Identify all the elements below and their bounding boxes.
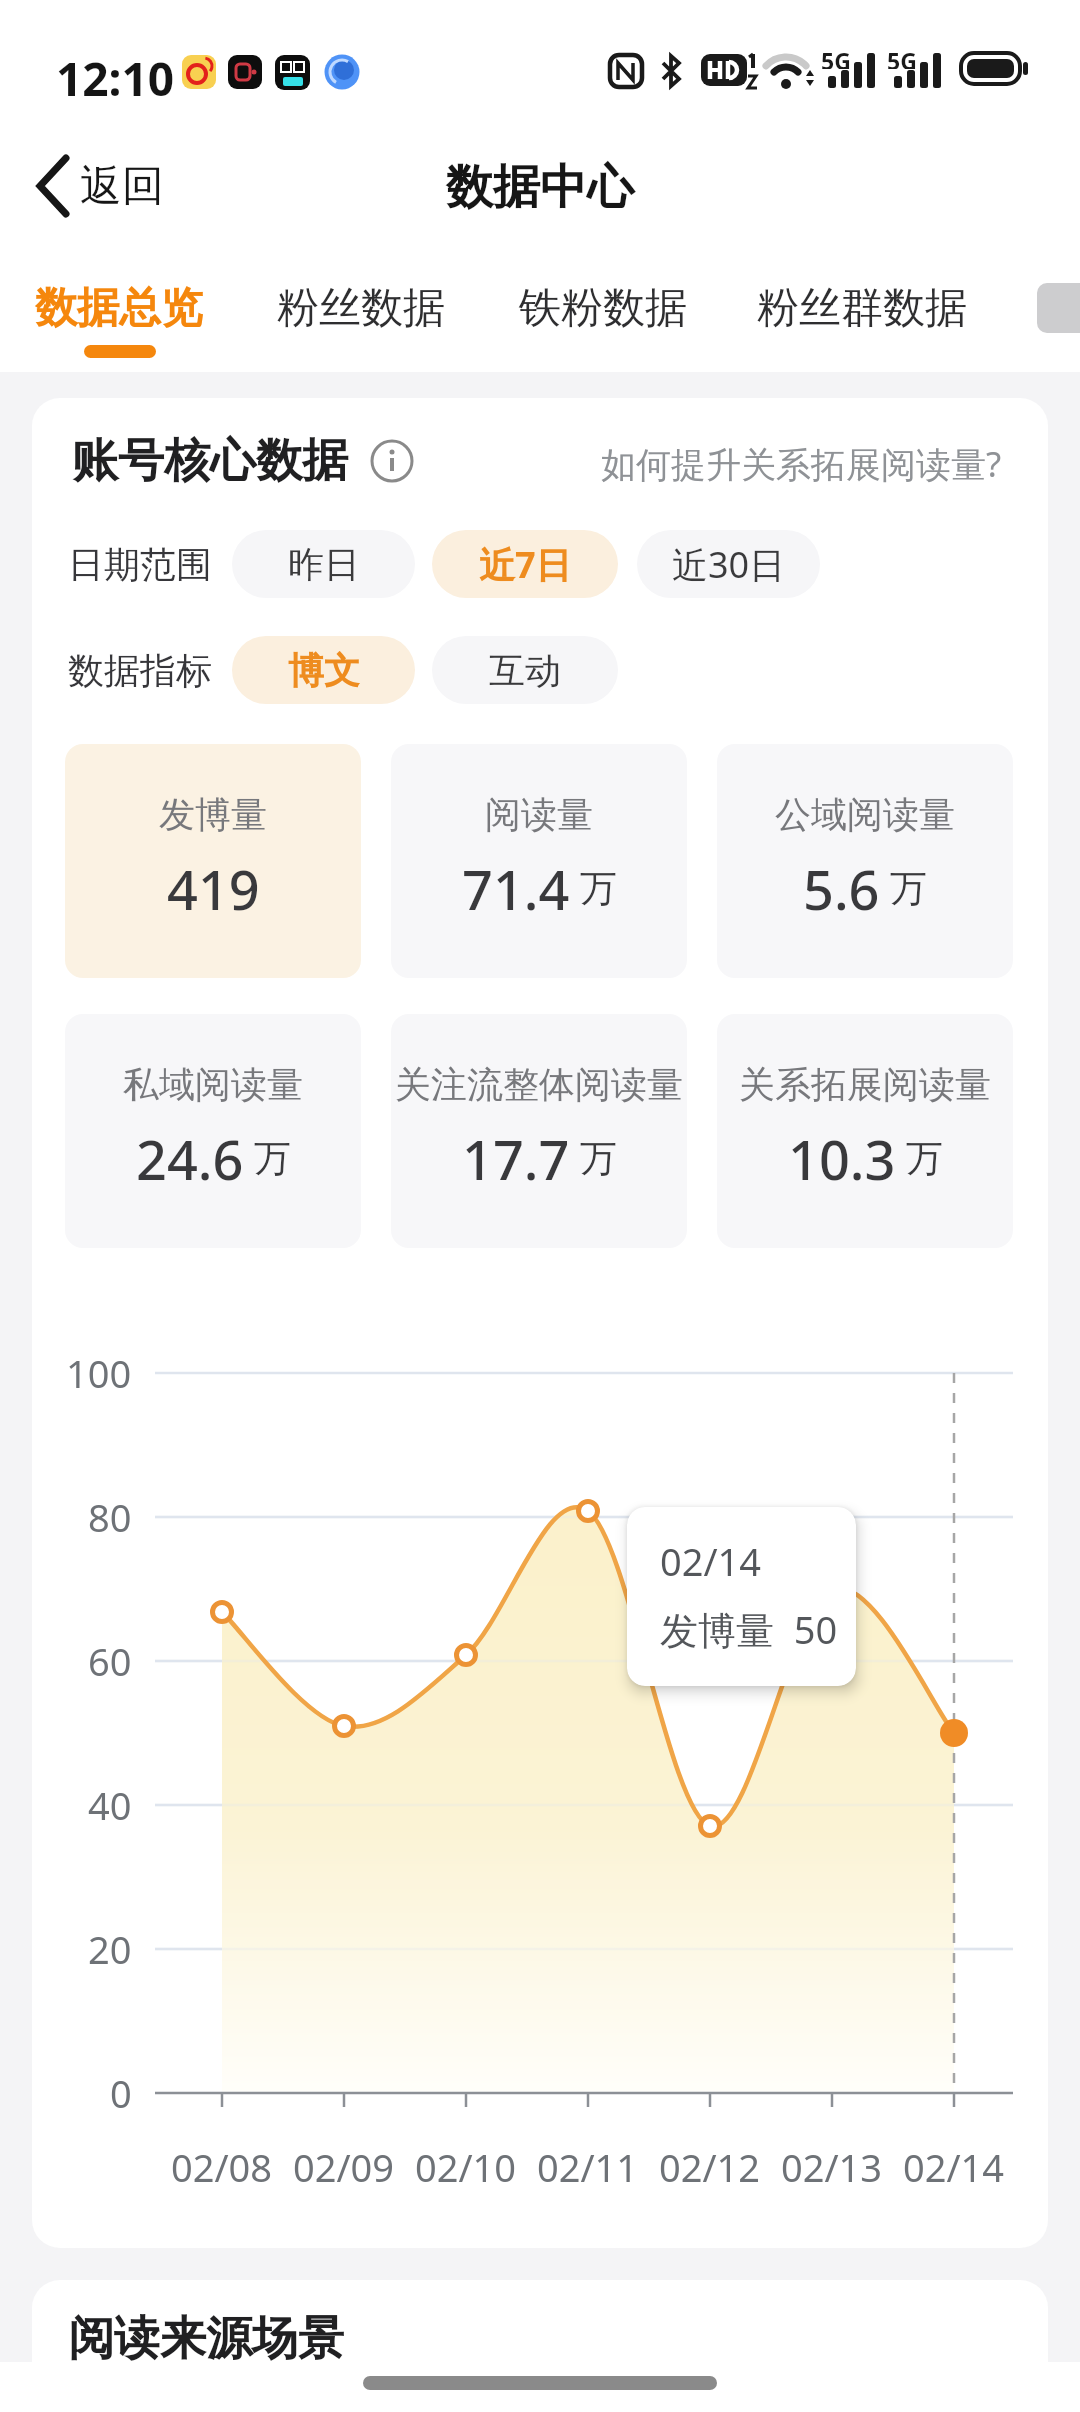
staticText: 昨日 [288, 542, 360, 587]
staticText: 02/14 [903, 2141, 1005, 2193]
staticText: 阅读量 [485, 792, 593, 836]
button[interactable]: 返回 [30, 150, 190, 222]
staticText: 5G [821, 45, 851, 69]
button[interactable]: 私域阅读量 [65, 1014, 361, 1248]
staticText: 40 [88, 1779, 132, 1831]
staticText: 互动 [489, 648, 561, 693]
staticText: 返回 [80, 160, 164, 213]
staticText: 博文 [288, 648, 360, 693]
staticText: 数据总览 [35, 282, 203, 335]
staticText: 万 [254, 1135, 291, 1182]
staticText: 日期范围 [68, 542, 212, 587]
staticText: 账号核心数据 [72, 432, 348, 490]
button[interactable]: 昨日 [232, 530, 415, 598]
staticText: 12:10 [56, 47, 175, 103]
button[interactable]: 互动 [432, 636, 618, 704]
staticText: 10.3 [788, 1122, 896, 1188]
button[interactable]: 近7日 [432, 530, 618, 598]
staticText: 60 [88, 1635, 132, 1687]
button[interactable]: 阅读量 [391, 744, 687, 978]
staticText: 万 [580, 865, 617, 912]
staticText: 5G [887, 45, 917, 69]
staticText: 发博量 50 [660, 1603, 838, 1655]
staticText: 0 [110, 2067, 132, 2119]
staticText: 粉丝群数据 [757, 282, 967, 335]
staticText: 粉丝数据 [277, 282, 445, 335]
staticText: 关系拓展阅读量 [739, 1062, 991, 1106]
staticText: 02/09 [293, 2141, 395, 2193]
staticText: 02/13 [781, 2141, 883, 2193]
staticText: 02/12 [659, 2141, 761, 2193]
staticText: 万 [890, 865, 927, 912]
button[interactable]: 如何提升关系拓展阅读量? [552, 440, 1002, 488]
button[interactable]: 数据总览 [33, 280, 205, 336]
staticText: 02/14 [660, 1535, 762, 1587]
staticText: 02/11 [537, 2141, 639, 2193]
staticText: 数据中心 [446, 158, 634, 217]
staticText: 万 [580, 1135, 617, 1182]
staticText: 5.6 [803, 852, 880, 918]
staticText: 铁粉数据 [519, 282, 687, 335]
staticText: 公域阅读量 [775, 792, 955, 836]
staticText: 数据指标 [68, 648, 212, 693]
staticText: 20 [88, 1923, 132, 1975]
button[interactable]: 关系拓展阅读量 [717, 1014, 1013, 1248]
staticText: 如何提升关系拓展阅读量? [601, 440, 1002, 488]
staticText: 近7日 [479, 540, 572, 589]
staticText: 02/10 [415, 2141, 517, 2193]
button[interactable]: 粉丝数据 [275, 280, 447, 336]
button[interactable]: 关注流整体阅读量 [391, 1014, 687, 1248]
staticText: 80 [88, 1491, 132, 1543]
staticText: 发博量 [159, 792, 267, 836]
button[interactable]: 博文 [232, 636, 415, 704]
staticText: 02/08 [171, 2141, 273, 2193]
button[interactable]: 发博量 [65, 744, 361, 978]
staticText: 私域阅读量 [123, 1062, 303, 1106]
staticText: 24.6 [136, 1122, 244, 1188]
staticText: 关注流整体阅读量 [395, 1062, 683, 1106]
button[interactable]: 铁粉数据 [517, 280, 689, 336]
staticText: 阅读来源场景 [68, 2310, 344, 2368]
button[interactable]: 公域阅读量 [717, 744, 1013, 978]
staticText: 419 [167, 852, 260, 918]
staticText: 71.4 [462, 852, 570, 918]
staticText: 万 [906, 1135, 943, 1182]
staticText: 17.7 [462, 1122, 570, 1188]
button[interactable]: 粉丝群数据 [755, 280, 969, 336]
button[interactable]: 近30日 [637, 530, 820, 598]
staticText: 100 [66, 1347, 132, 1399]
staticText: 近30日 [672, 540, 786, 589]
